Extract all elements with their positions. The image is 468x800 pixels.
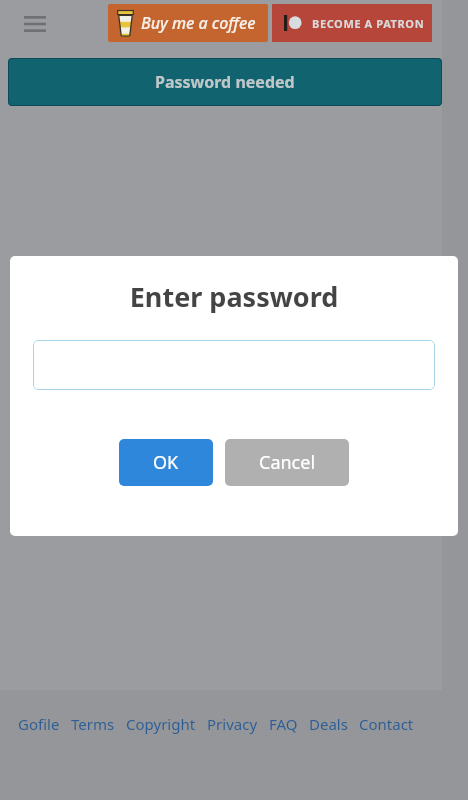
staticText: Contact (359, 714, 414, 734)
staticText: Privacy (207, 714, 258, 734)
staticText: Enter password (10, 278, 458, 315)
staticText: Password needed (155, 71, 295, 93)
staticText: BECOME A PATRON (312, 16, 425, 31)
staticText: Buy me a coffee (141, 12, 256, 34)
staticText: Gofile (18, 714, 60, 734)
button[interactable]: Cancel (225, 439, 349, 486)
button[interactable]: FAQ (269, 714, 298, 734)
button[interactable]: Privacy (207, 714, 258, 734)
button[interactable]: Contact (359, 714, 414, 734)
button[interactable]: BECOME A PATRON (272, 4, 432, 42)
staticText: FAQ (269, 714, 298, 734)
button[interactable]: Gofile (18, 714, 60, 734)
button[interactable] (33, 340, 435, 390)
button[interactable]: Menu (16, 8, 54, 40)
staticText: Deals (309, 714, 348, 734)
staticText: OK (153, 450, 179, 475)
button[interactable]: Terms (71, 714, 115, 734)
staticText: Cancel (259, 450, 316, 475)
button[interactable]: Copyright (126, 714, 196, 734)
staticText: Copyright (126, 714, 196, 734)
button[interactable]: Buy me a coffee (108, 4, 268, 42)
button[interactable]: Password needed (8, 58, 442, 106)
button[interactable]: Deals (309, 714, 348, 734)
button[interactable]: OK (119, 439, 213, 486)
staticText: Terms (71, 714, 115, 734)
